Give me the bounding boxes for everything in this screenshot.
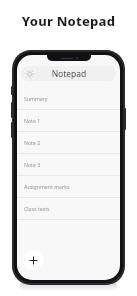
button[interactable]: Note 3 — [17, 154, 120, 176]
staticText: Your Notepad — [0, 12, 137, 30]
button[interactable]: Settings — [25, 69, 34, 78]
staticText: Class tests — [24, 205, 50, 212]
staticText: Note 2 — [24, 139, 41, 146]
button[interactable]: Class tests — [17, 198, 120, 220]
staticText: Note 3 — [24, 161, 41, 168]
staticText: Summary — [24, 95, 48, 102]
button[interactable]: Note 2 — [17, 132, 120, 154]
staticText: Note 1 — [24, 117, 41, 124]
staticText: Assignment marks — [24, 183, 70, 190]
staticText: Notepad — [30, 68, 108, 80]
button[interactable]: Note 1 — [17, 110, 120, 132]
button[interactable]: Assignment marks — [17, 176, 120, 198]
button[interactable]: Summary — [17, 88, 120, 110]
button[interactable]: Add note — [23, 250, 44, 271]
button[interactable]: Settings — [21, 66, 116, 81]
